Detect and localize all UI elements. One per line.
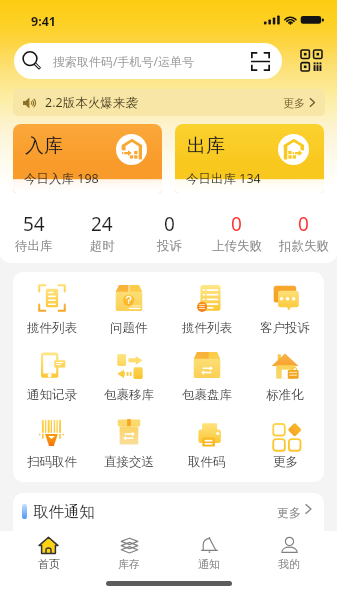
button[interactable]: Scan code: [251, 52, 270, 71]
button[interactable]: 包裹盘库: [168, 351, 246, 418]
staticText: 上传失败: [212, 238, 262, 254]
button[interactable]: 取件码: [168, 418, 246, 482]
staticText: 揽件列表: [182, 320, 232, 336]
button[interactable]: 更多: [246, 418, 324, 482]
button[interactable]: 直接交送: [90, 418, 168, 482]
button[interactable]: 我的: [249, 531, 329, 575]
button[interactable]: 搜索取件码/手机号/运单号: [14, 43, 282, 79]
staticText: 首页: [38, 557, 60, 571]
button[interactable]: 0: [270, 211, 337, 257]
button[interactable]: 问题件: [90, 284, 168, 351]
staticText: 2.2版本火爆来袭: [45, 94, 138, 111]
staticText: 更多: [283, 96, 305, 110]
staticText: 扫码取件: [27, 454, 77, 470]
staticText: 9:41: [31, 13, 56, 30]
button[interactable]: 揽件列表: [168, 284, 246, 351]
staticText: 取件通知: [33, 502, 95, 522]
staticText: 出库: [187, 134, 225, 158]
staticText: 超时: [90, 238, 115, 254]
staticText: 取件码: [188, 454, 226, 470]
staticText: 包裹盘库: [182, 387, 232, 403]
button[interactable]: 通知: [169, 531, 249, 575]
staticText: 我的: [278, 557, 300, 571]
button[interactable]: 揽件列表: [13, 284, 90, 351]
button[interactable]: 49: [116, 526, 220, 569]
button[interactable]: 125: [13, 526, 116, 569]
staticText: 客户投诉: [260, 320, 310, 336]
staticText: 直接交送: [104, 454, 154, 470]
staticText: 入库: [25, 134, 63, 158]
staticText: 包裹移库: [104, 387, 154, 403]
button[interactable]: 54: [0, 211, 68, 257]
staticText: 通知: [198, 557, 220, 571]
button[interactable]: 24: [68, 211, 136, 257]
staticText: 54: [23, 211, 45, 237]
staticText: 待取件: [46, 553, 84, 569]
staticText: 0: [164, 211, 175, 237]
staticText: 待出库: [15, 238, 53, 254]
staticText: 0: [298, 211, 309, 237]
button[interactable]: 客户投诉: [246, 284, 324, 351]
button[interactable]: 0: [220, 526, 324, 569]
button[interactable]: 包裹移库: [90, 351, 168, 418]
staticText: 通知记录: [27, 387, 77, 403]
button[interactable]: QR code: [301, 50, 322, 71]
button[interactable]: 0: [203, 211, 270, 257]
staticText: 更多: [273, 454, 298, 470]
button[interactable]: 扫码取件: [13, 418, 90, 482]
button[interactable]: 首页: [8, 531, 89, 575]
staticText: 库存: [118, 557, 140, 571]
staticText: 0: [231, 211, 242, 237]
staticText: 揽件列表: [27, 320, 77, 336]
staticText: 通知失败: [247, 553, 297, 569]
button[interactable]: 出库: [175, 124, 324, 193]
staticText: 问题件: [110, 320, 148, 336]
staticText: 扣款失败: [279, 238, 329, 254]
staticText: 更多: [277, 505, 301, 520]
button[interactable]: 0: [136, 211, 203, 257]
button[interactable]: 入库: [13, 124, 162, 193]
button[interactable]: 通知记录: [13, 351, 90, 418]
staticText: 标准化: [266, 387, 304, 403]
staticText: 今日出库 134: [186, 170, 261, 187]
staticText: 今日入库 198: [24, 170, 99, 187]
button[interactable]: 2.2版本火爆来袭: [13, 89, 325, 116]
staticText: 投诉: [157, 238, 182, 254]
staticText: 125: [48, 526, 81, 552]
staticText: 24: [91, 211, 113, 237]
button[interactable]: 库存: [89, 531, 169, 575]
button[interactable]: 标准化: [246, 351, 324, 418]
staticText: 搜索取件码/手机号/运单号: [53, 53, 194, 69]
button[interactable]: More notices: [303, 502, 317, 516]
